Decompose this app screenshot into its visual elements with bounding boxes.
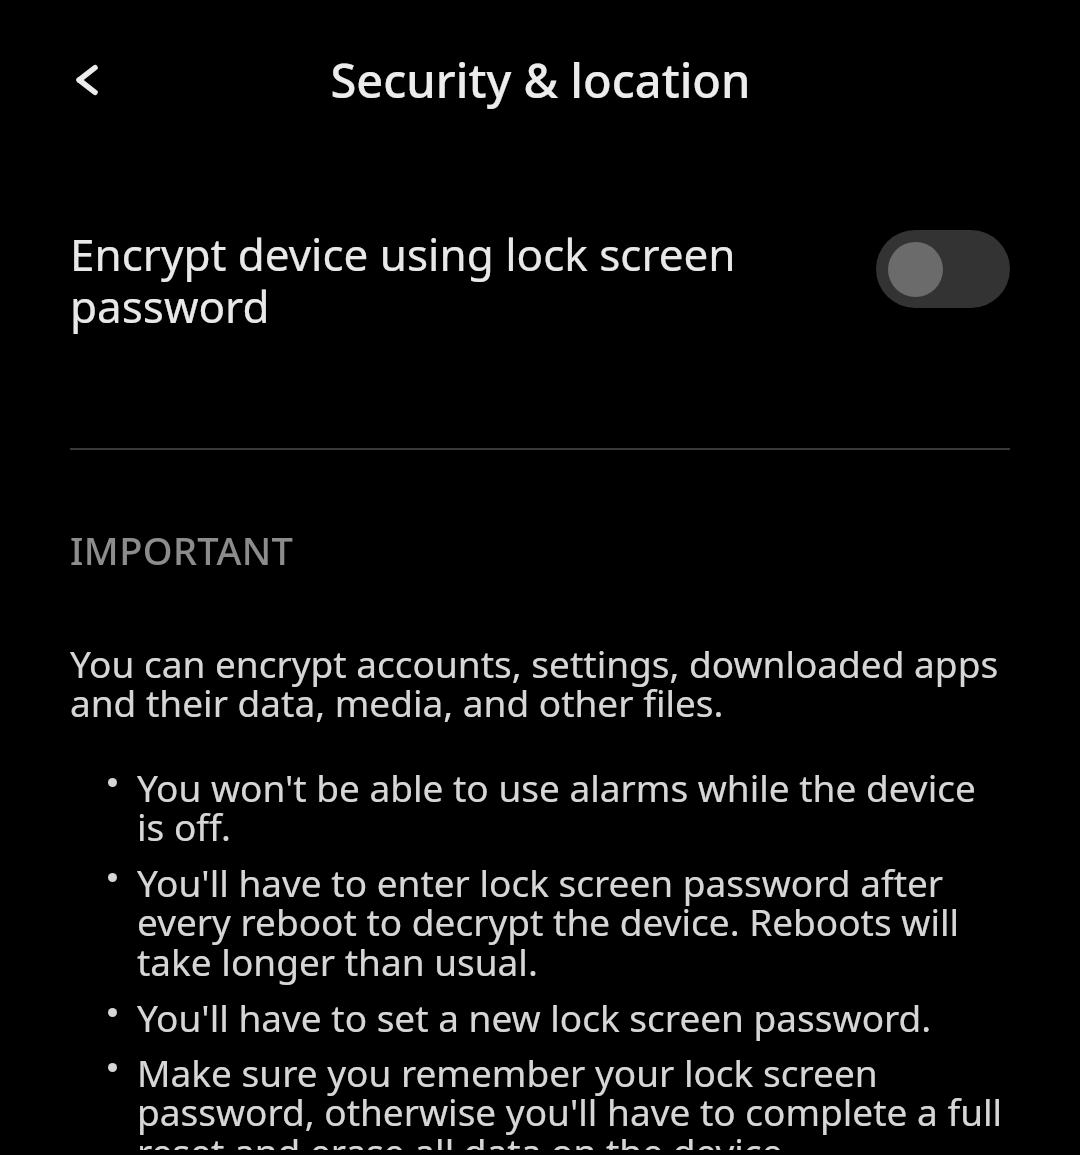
button[interactable]: Encrypt device using lock screen passwor… bbox=[0, 160, 1080, 356]
staticText: Security & location bbox=[330, 48, 751, 112]
button[interactable]: Back bbox=[46, 38, 130, 122]
staticText: You won't be able to use alarms while th… bbox=[137, 762, 1010, 852]
staticText: You'll have to set a new lock screen pas… bbox=[137, 992, 932, 1042]
staticText: You can encrypt accounts, settings, down… bbox=[70, 638, 1010, 728]
staticText: IMPORTANT bbox=[70, 524, 294, 576]
staticText: You'll have to enter lock screen passwor… bbox=[137, 857, 1010, 987]
staticText: Encrypt device using lock screen passwor… bbox=[70, 224, 836, 336]
staticText: Make sure you remember your lock screen … bbox=[137, 1047, 1010, 1150]
button[interactable]: Encrypt device toggle, off bbox=[876, 230, 1010, 308]
